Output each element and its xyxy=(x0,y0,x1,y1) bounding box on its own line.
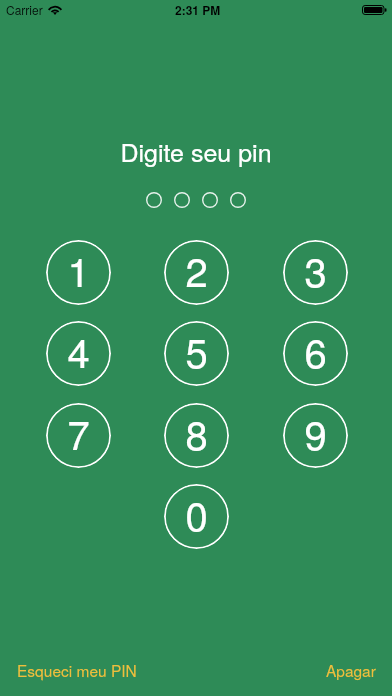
button[interactable]: 3 xyxy=(283,240,348,305)
button[interactable]: 6 xyxy=(283,321,348,386)
staticText: 2:31 PM xyxy=(175,1,221,18)
button[interactable]: 4 xyxy=(46,321,111,386)
other: Wi-Fi signal xyxy=(48,5,62,15)
button[interactable]: 5 xyxy=(164,321,229,386)
staticText: 4 xyxy=(67,322,90,379)
staticText: 8 xyxy=(185,404,208,461)
button[interactable]: 0 xyxy=(164,484,229,549)
button[interactable]: 1 xyxy=(46,240,111,305)
staticText: 9 xyxy=(304,404,327,461)
staticText: 1 xyxy=(67,241,90,298)
staticText: Carrier xyxy=(6,1,43,18)
staticText: 6 xyxy=(304,322,327,379)
staticText: Esqueci meu PIN xyxy=(17,659,137,681)
button[interactable]: Esqueci meu PIN xyxy=(0,649,151,696)
button[interactable]: 9 xyxy=(283,403,348,468)
other: Battery full xyxy=(362,5,387,15)
staticText: Digite seu pin xyxy=(120,133,272,169)
button[interactable]: 2 xyxy=(164,240,229,305)
button[interactable]: 8 xyxy=(164,403,229,468)
staticText: 7 xyxy=(67,404,90,461)
staticText: 2 xyxy=(185,241,208,298)
staticText: 3 xyxy=(304,241,327,298)
staticText: 5 xyxy=(185,322,208,379)
button[interactable]: 7 xyxy=(46,403,111,468)
staticText: Apagar xyxy=(326,659,376,681)
button[interactable]: Apagar xyxy=(312,649,392,696)
staticText: 0 xyxy=(185,485,208,542)
